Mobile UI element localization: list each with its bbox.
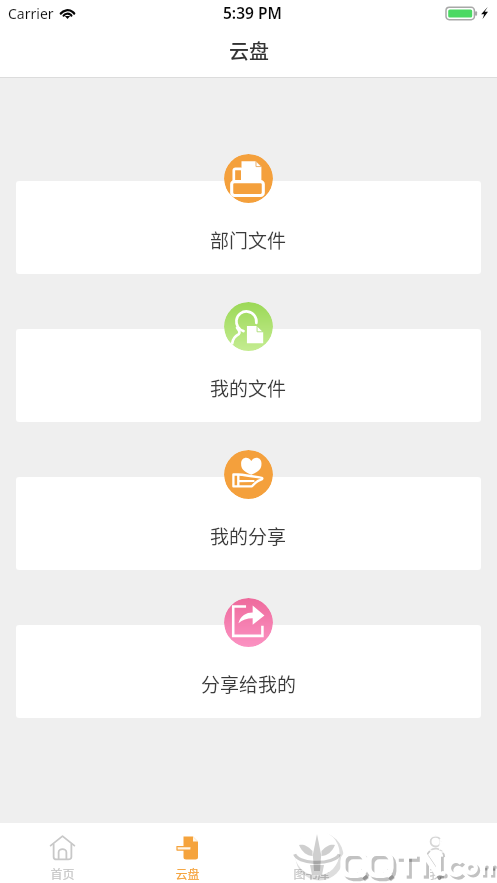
staticText: 部门文件: [210, 226, 287, 254]
staticText: 我的分享: [210, 522, 287, 550]
staticText: 首页: [50, 865, 75, 882]
staticText: 图书库: [293, 865, 330, 882]
button[interactable]: 图书库: [249, 824, 373, 883]
button[interactable]: 我: [373, 824, 497, 883]
staticText: 云盘: [229, 36, 269, 65]
staticText: 5:39 PM: [223, 2, 282, 23]
button[interactable]: 分享给我的: [16, 625, 481, 718]
staticText: 云盘: [175, 865, 200, 882]
button[interactable]: 我的分享: [16, 477, 481, 570]
button[interactable]: 云盘: [125, 824, 249, 883]
button[interactable]: 我的文件: [16, 329, 481, 422]
staticText: 分享给我的: [201, 670, 297, 698]
staticText: Carrier: [8, 4, 54, 23]
button[interactable]: 首页: [0, 824, 125, 883]
staticText: 我: [429, 865, 442, 882]
staticText: 腾牛网: [439, 836, 472, 852]
button[interactable]: 部门文件: [16, 181, 481, 274]
staticText: 我的文件: [210, 374, 287, 402]
